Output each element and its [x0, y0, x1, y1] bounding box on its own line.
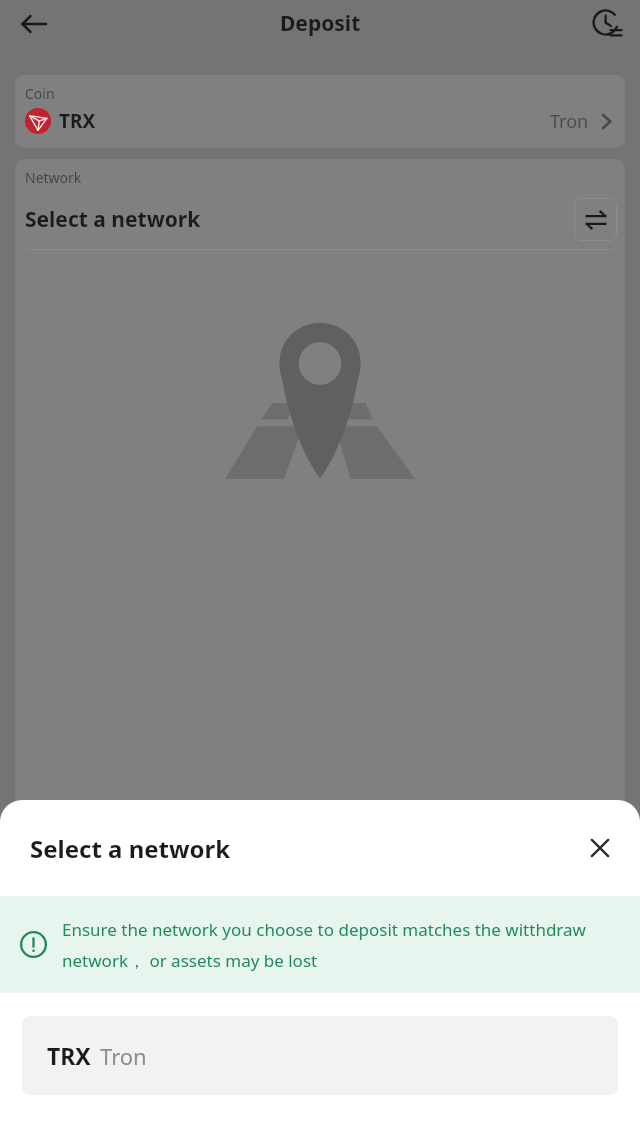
button[interactable]: History — [582, 0, 634, 47]
button[interactable]: Coin — [15, 75, 625, 148]
button[interactable]: Switch network — [574, 198, 617, 241]
staticText: Deposit — [280, 9, 361, 38]
staticText: Select a network — [25, 205, 201, 234]
staticText: Network — [25, 168, 82, 187]
staticText: TRX — [47, 1040, 91, 1071]
staticText: Tron — [100, 1041, 147, 1071]
button[interactable]: TRX — [22, 1016, 618, 1095]
staticText: Ensure the network you choose to deposit… — [62, 918, 618, 972]
staticText: Select a network — [30, 832, 231, 865]
staticText: Tron — [550, 109, 589, 134]
staticText: TRX — [59, 108, 96, 134]
staticText: Coin — [25, 84, 55, 103]
button[interactable]: Close — [576, 824, 624, 872]
button[interactable]: Back — [6, 0, 62, 47]
